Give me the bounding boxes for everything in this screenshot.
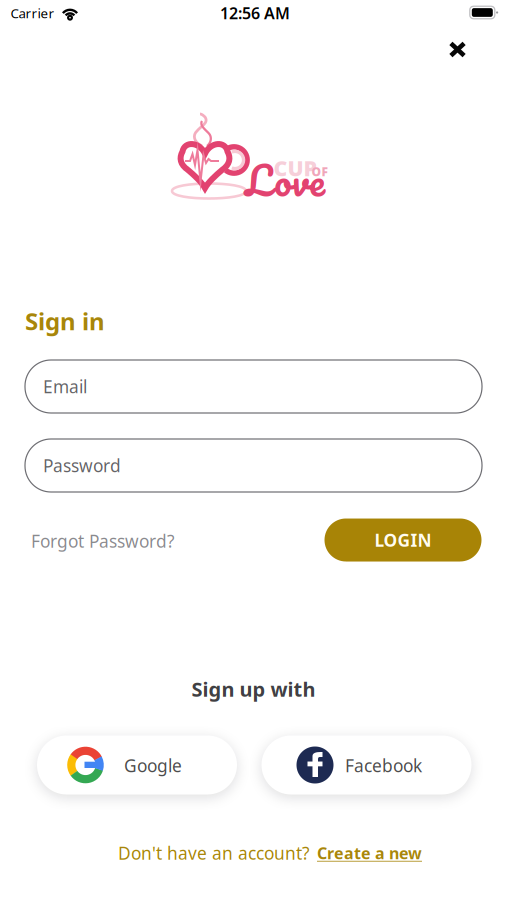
staticText: Sign in	[25, 305, 105, 337]
staticText: Sign up with	[191, 676, 315, 702]
button[interactable]: Forgot Password?	[31, 529, 175, 552]
staticText: Don't have an account?	[118, 841, 310, 864]
staticText: Password	[43, 454, 121, 477]
button[interactable]: Google	[37, 735, 237, 794]
staticText: LOGIN	[374, 528, 431, 551]
staticText: Email	[43, 375, 87, 398]
staticText: Create a new	[317, 842, 422, 864]
staticText: Carrier	[10, 4, 54, 22]
button[interactable]: Don't have an account?	[118, 841, 422, 864]
staticText: Forgot Password?	[31, 529, 175, 552]
staticText: CUP	[273, 154, 316, 182]
staticText: 12:56 AM	[220, 2, 290, 24]
staticText: Love	[245, 146, 325, 214]
staticText: OF	[311, 163, 327, 179]
staticText: Facebook	[345, 754, 422, 777]
button[interactable]: LOGIN	[324, 518, 481, 561]
button[interactable]: Facebook	[261, 735, 471, 794]
button[interactable]: Close	[435, 28, 479, 71]
staticText: Google	[124, 754, 182, 777]
